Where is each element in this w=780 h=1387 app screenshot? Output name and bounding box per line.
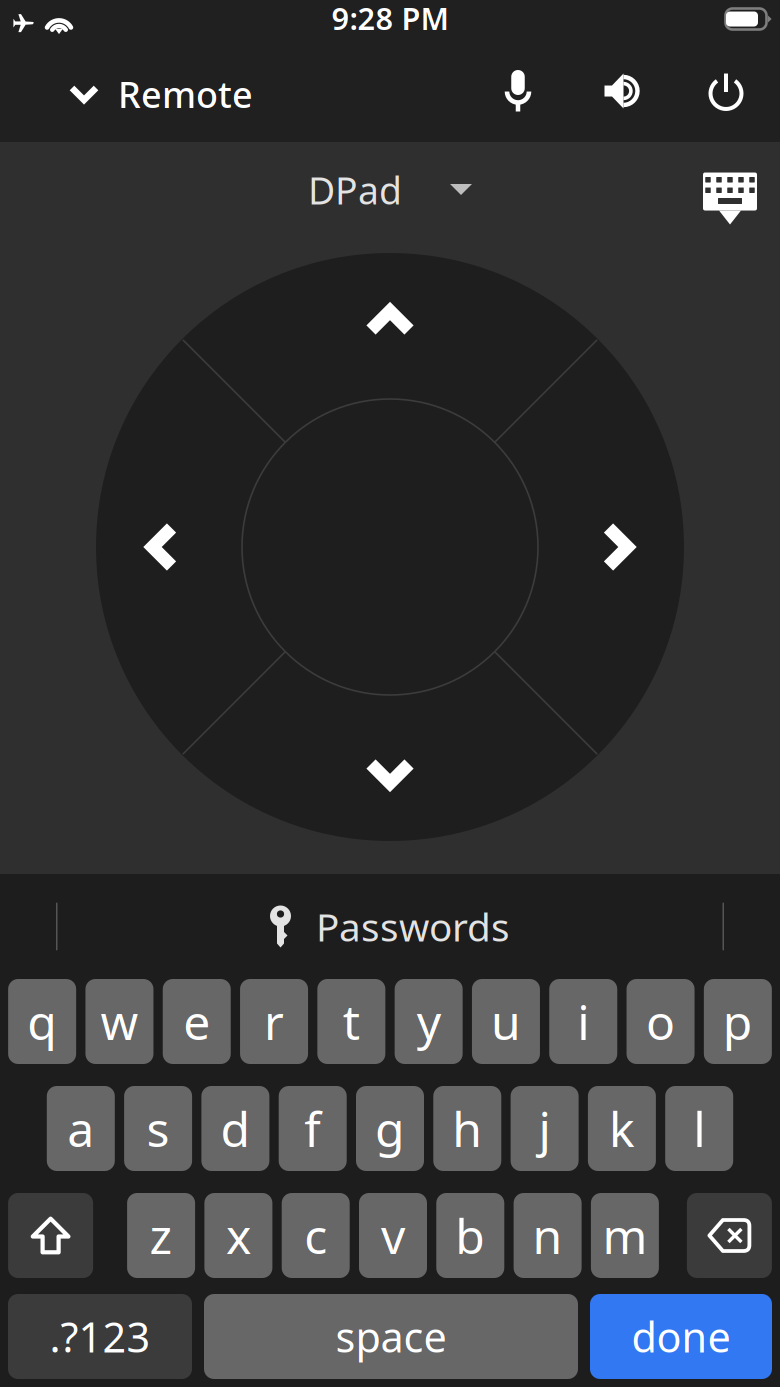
- button[interactable]: m: [591, 1193, 659, 1278]
- button[interactable]: Volume: [570, 50, 674, 138]
- button[interactable]: g: [356, 1086, 424, 1171]
- staticText: r: [264, 990, 284, 1053]
- button[interactable]: j: [511, 1086, 579, 1171]
- staticText: i: [577, 990, 589, 1053]
- staticText: u: [491, 990, 521, 1053]
- staticText: y: [417, 990, 441, 1053]
- staticText: .?123: [49, 1309, 150, 1364]
- button[interactable]: n: [514, 1193, 582, 1278]
- button[interactable]: i: [549, 979, 617, 1064]
- button[interactable]: r: [240, 979, 308, 1064]
- button[interactable]: Left: [67, 447, 257, 647]
- staticText: j: [539, 1097, 551, 1160]
- staticText: DPad: [308, 165, 402, 215]
- button[interactable]: DPad: [308, 150, 472, 230]
- button[interactable]: a: [47, 1086, 115, 1171]
- staticText: x: [226, 1204, 251, 1267]
- button[interactable]: Passwords: [270, 880, 510, 972]
- staticText: done: [631, 1309, 730, 1364]
- button[interactable]: l: [665, 1086, 733, 1171]
- button[interactable]: k: [588, 1086, 656, 1171]
- staticText: l: [693, 1097, 705, 1160]
- button[interactable]: Down: [290, 678, 490, 868]
- staticText: f: [304, 1097, 321, 1160]
- button[interactable]: Voice input: [466, 50, 570, 138]
- button[interactable]: y: [395, 979, 463, 1064]
- button[interactable]: Power: [674, 50, 778, 138]
- staticText: a: [67, 1097, 94, 1160]
- button[interactable]: Hide keyboard: [703, 163, 757, 216]
- staticText: Passwords: [316, 901, 510, 952]
- staticText: n: [533, 1204, 563, 1267]
- staticText: Remote: [118, 70, 253, 118]
- staticText: s: [147, 1097, 170, 1160]
- button[interactable]: Delete: [687, 1193, 772, 1278]
- button[interactable]: f: [279, 1086, 347, 1171]
- button[interactable]: x: [204, 1193, 272, 1278]
- staticText: t: [343, 990, 360, 1053]
- button[interactable]: o: [626, 979, 694, 1064]
- button[interactable]: c: [282, 1193, 350, 1278]
- button[interactable]: d: [201, 1086, 269, 1171]
- staticText: m: [602, 1204, 647, 1267]
- button[interactable]: Shift: [8, 1193, 93, 1278]
- button[interactable]: z: [127, 1193, 195, 1278]
- staticText: c: [304, 1204, 327, 1267]
- button[interactable]: done: [590, 1294, 772, 1379]
- button[interactable]: s: [124, 1086, 192, 1171]
- staticText: h: [452, 1097, 482, 1160]
- staticText: b: [455, 1204, 485, 1267]
- staticText: 9:28 PM: [331, 0, 448, 38]
- button[interactable]: Select: [242, 399, 538, 695]
- staticText: e: [183, 990, 210, 1053]
- staticText: k: [609, 1097, 635, 1160]
- button[interactable]: u: [472, 979, 540, 1064]
- button[interactable]: p: [704, 979, 772, 1064]
- button[interactable]: v: [359, 1193, 427, 1278]
- staticText: g: [375, 1097, 405, 1160]
- staticText: p: [723, 990, 753, 1053]
- button[interactable]: Up: [290, 225, 490, 415]
- button[interactable]: space: [204, 1294, 578, 1379]
- button[interactable]: b: [436, 1193, 504, 1278]
- staticText: space: [335, 1309, 446, 1364]
- staticText: o: [646, 990, 675, 1053]
- staticText: q: [27, 990, 57, 1053]
- staticText: z: [150, 1204, 173, 1267]
- button[interactable]: .?123: [8, 1294, 192, 1379]
- button[interactable]: w: [85, 979, 153, 1064]
- button[interactable]: q: [8, 979, 76, 1064]
- button[interactable]: Collapse: [42, 58, 126, 130]
- staticText: v: [381, 1204, 405, 1267]
- button[interactable]: Right: [523, 447, 713, 647]
- staticText: w: [100, 990, 138, 1053]
- button[interactable]: e: [163, 979, 231, 1064]
- staticText: d: [220, 1097, 250, 1160]
- button[interactable]: h: [433, 1086, 501, 1171]
- button[interactable]: t: [317, 979, 385, 1064]
